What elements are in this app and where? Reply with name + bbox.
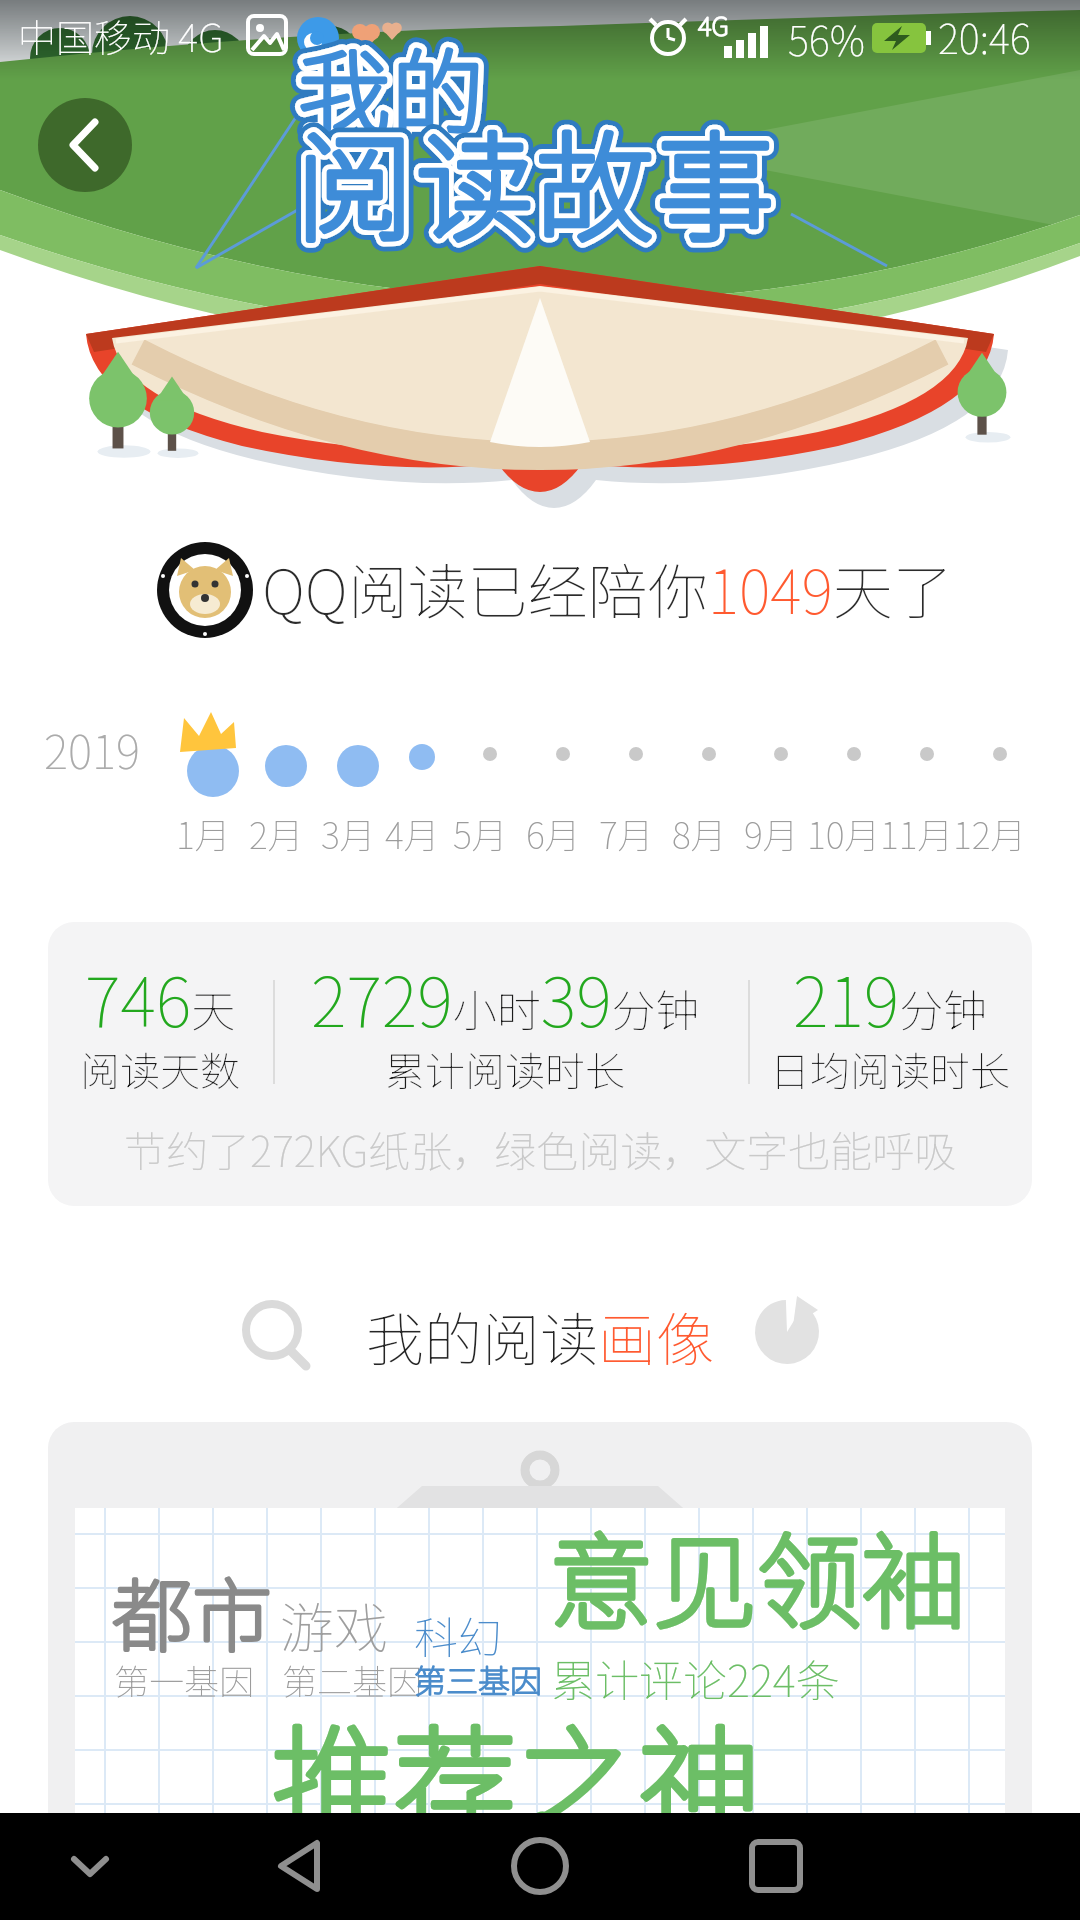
staticText: 第三基因 bbox=[414, 1656, 543, 1702]
button[interactable] bbox=[726, 1823, 826, 1910]
staticText: 3月 bbox=[321, 807, 376, 859]
button[interactable] bbox=[490, 1823, 590, 1910]
staticText: 7月 bbox=[599, 807, 654, 859]
staticText: 第三基因 bbox=[414, 1656, 543, 1702]
staticText: 游戏 bbox=[280, 1585, 388, 1663]
staticText: 都市 bbox=[112, 1552, 272, 1668]
staticText: 累计评论224条 bbox=[551, 1646, 840, 1710]
staticText: 4G bbox=[698, 6, 729, 44]
staticText: 我的阅读画像 bbox=[366, 1294, 715, 1378]
staticText: 意见领袖 bbox=[549, 1499, 966, 1650]
staticText: 累计阅读时长 bbox=[385, 1040, 625, 1098]
staticText: 56% bbox=[788, 10, 865, 68]
staticText: 8月 bbox=[672, 807, 727, 859]
staticText: 第一基因 bbox=[114, 1654, 255, 1705]
staticText: 中国移动 4G bbox=[18, 8, 224, 63]
staticText: 意见领袖 bbox=[549, 1499, 966, 1650]
button[interactable] bbox=[260, 1823, 360, 1910]
staticText: 2729小时39分钟 bbox=[311, 948, 700, 1046]
staticText: 我的 bbox=[298, 20, 487, 153]
staticText: 阅读故事 bbox=[296, 94, 777, 265]
staticText: 219分钟 bbox=[793, 948, 988, 1046]
staticText: 我的 bbox=[298, 20, 487, 153]
staticText: 推荐之神 bbox=[272, 1686, 760, 1863]
staticText: 阅读故事 bbox=[296, 94, 777, 265]
staticText: 5月 bbox=[453, 807, 508, 859]
staticText: 6月 bbox=[526, 807, 581, 859]
staticText: 9月 bbox=[744, 807, 799, 859]
staticText: 2019 bbox=[44, 716, 140, 783]
staticText: 第二基因 bbox=[282, 1654, 423, 1705]
staticText: 节约了272KG纸张，绿色阅读，文字也能呼吸 bbox=[124, 1118, 957, 1179]
staticText: 4G bbox=[698, 6, 729, 44]
staticText: QQ阅读已经陪你1049天了 bbox=[262, 544, 953, 631]
staticText: 阅读故事 bbox=[296, 94, 777, 265]
staticText: 我的 bbox=[298, 20, 487, 153]
staticText: 日均阅读时长 bbox=[770, 1040, 1010, 1098]
staticText: 2月 bbox=[249, 807, 304, 859]
staticText: 科幻 bbox=[414, 1603, 502, 1667]
staticText: 20:46 bbox=[938, 8, 1031, 66]
staticText: 11月 bbox=[880, 807, 954, 859]
staticText: 4月 bbox=[385, 807, 440, 859]
button[interactable] bbox=[50, 1823, 130, 1910]
staticText: 12月 bbox=[953, 807, 1027, 859]
staticText: 阅读故事 bbox=[296, 94, 777, 265]
staticText: 阅读天数 bbox=[80, 1040, 240, 1098]
button[interactable] bbox=[38, 98, 132, 192]
staticText: 746天 bbox=[85, 948, 236, 1046]
staticText: 10月 bbox=[807, 807, 881, 859]
staticText: 都市 bbox=[112, 1552, 272, 1668]
staticText: 1月 bbox=[176, 807, 231, 859]
staticText: 推荐之神 bbox=[272, 1686, 760, 1863]
staticText: 我的 bbox=[298, 20, 487, 153]
